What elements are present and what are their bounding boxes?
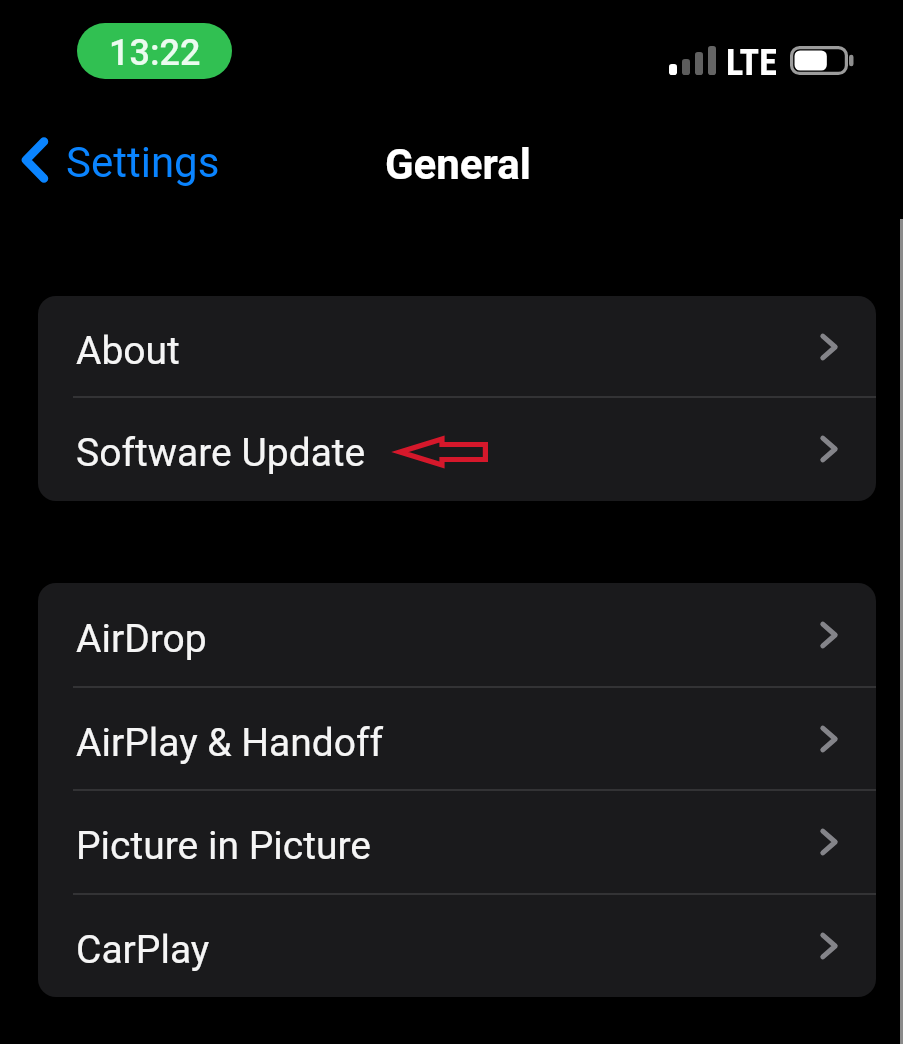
other: Battery level (790, 46, 856, 76)
button[interactable]: About (38, 296, 876, 397)
staticText: Picture in Picture (76, 823, 371, 869)
button[interactable]: AirPlay & Handoff (38, 687, 876, 790)
staticText: LTE (726, 42, 777, 84)
staticText: About (76, 328, 180, 374)
staticText: Software Update (76, 430, 366, 476)
button[interactable]: CarPlay (38, 894, 876, 997)
button[interactable]: AirDrop (38, 583, 876, 687)
staticText: CarPlay (76, 927, 210, 973)
staticText: 13:22 (109, 32, 201, 74)
staticText: AirDrop (76, 616, 207, 662)
staticText: Settings (66, 138, 220, 187)
staticText: General (385, 140, 531, 189)
button[interactable]: Settings (16, 130, 230, 190)
staticText: AirPlay & Handoff (76, 720, 384, 766)
button[interactable]: Recording timer 13:22 (77, 23, 232, 79)
button[interactable]: Picture in Picture (38, 790, 876, 894)
button[interactable]: Software Update (38, 397, 876, 501)
other: Cellular signal strength (669, 46, 715, 75)
